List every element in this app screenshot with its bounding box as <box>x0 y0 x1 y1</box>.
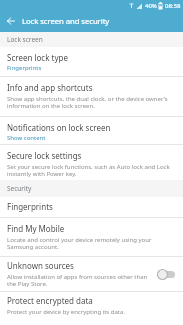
staticText: Lock screen and security <box>22 16 110 27</box>
staticText: Protect encrypted data <box>7 295 93 306</box>
staticText: Locate and control your device remotely … <box>7 236 152 251</box>
button[interactable]: Info and app shortcuts <box>0 77 183 116</box>
staticText: Show content <box>7 134 46 142</box>
staticText: 08:58 <box>165 2 181 10</box>
button[interactable]: Protect encrypted data <box>0 292 183 325</box>
button[interactable]: Unknown sources <box>0 257 183 291</box>
staticText: Notifications on lock screen <box>7 122 111 133</box>
staticText: Unknown sources <box>7 260 74 271</box>
staticText: Screen lock type <box>7 52 68 63</box>
button[interactable] <box>0 12 22 30</box>
staticText: Show app shortcuts, the dual clock, or t… <box>7 95 168 110</box>
staticText: Fingerprints <box>7 201 53 212</box>
button[interactable]: Fingerprints <box>0 197 183 217</box>
staticText: Secure lock settings <box>7 150 82 161</box>
staticText: 40% <box>145 2 157 10</box>
staticText: Find My Mobile <box>7 223 65 234</box>
staticText: Protect your device by encrypting its da… <box>7 308 125 316</box>
staticText: Fingerprints <box>7 64 42 72</box>
staticText: Info and app shortcuts <box>7 82 93 93</box>
staticText: Allow installation of apps from sources … <box>7 273 148 288</box>
button[interactable]: Secure lock settings <box>0 145 183 180</box>
button[interactable]: Find My Mobile <box>0 218 183 256</box>
button[interactable]: Notifications on lock screen <box>0 117 183 144</box>
staticText: Set your secure lock functions, such as … <box>7 163 170 178</box>
staticText: Lock screen <box>7 35 43 44</box>
button[interactable]: Screen lock type <box>0 47 183 76</box>
staticText: Security <box>7 184 32 193</box>
